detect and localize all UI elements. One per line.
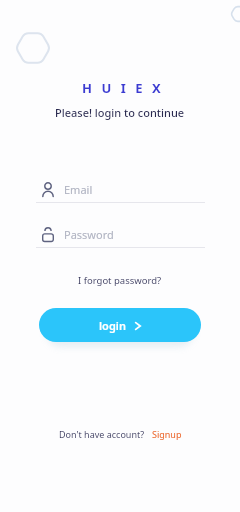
button[interactable]: login <box>39 308 201 342</box>
button[interactable]: Don't have account? <box>59 428 182 440</box>
staticText: Password <box>64 227 114 242</box>
staticText: Signup <box>152 428 182 440</box>
button[interactable]: I forgot password? <box>78 274 162 287</box>
staticText: HUIEX <box>82 79 171 97</box>
button[interactable]: Password <box>42 227 114 242</box>
staticText: login <box>99 318 126 333</box>
staticText: Please! login to continue <box>55 105 185 120</box>
staticText: Don't have account? <box>59 428 145 440</box>
staticText: Email <box>64 182 93 197</box>
button[interactable]: Email <box>42 182 93 197</box>
